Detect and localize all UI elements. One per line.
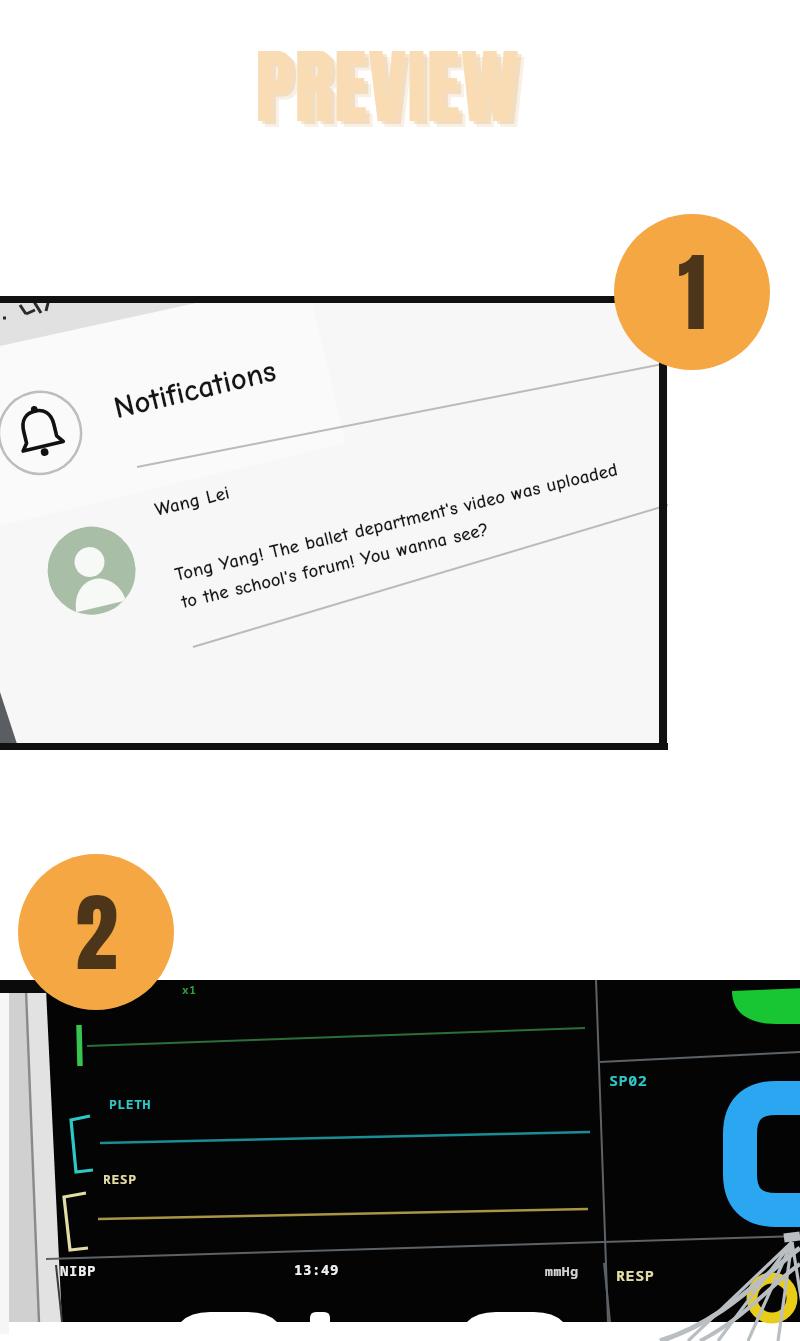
staticText: 2 (75, 868, 118, 997)
staticText: Wang Lei (153, 481, 233, 521)
staticText: RESP (103, 1170, 137, 1188)
button[interactable]: Patient monitor photo (0, 980, 800, 1341)
staticText: Notifications (110, 353, 280, 426)
staticText: mmHg (545, 1262, 579, 1280)
staticText: SP02 (609, 1070, 648, 1090)
staticText: PREVIEW (262, 32, 527, 154)
button[interactable]: Wang Lei (33, 363, 668, 694)
staticText: 1 (678, 228, 707, 357)
staticText: RESP (616, 1265, 655, 1285)
button[interactable]: Panel 1 (614, 214, 770, 370)
staticText: NIBP (60, 1261, 96, 1280)
staticText: 13:49 (294, 1260, 339, 1279)
staticText: PREVIEW (255, 26, 520, 148)
staticText: Tong Yang! The ballet department's video… (172, 458, 626, 613)
staticText: PLETH (109, 1095, 152, 1113)
staticText: x1 (182, 982, 197, 997)
button[interactable]: Notifications (0, 381, 92, 485)
staticText: PREVIEW (259, 29, 524, 151)
button[interactable]: Panel 2 (18, 854, 174, 1010)
